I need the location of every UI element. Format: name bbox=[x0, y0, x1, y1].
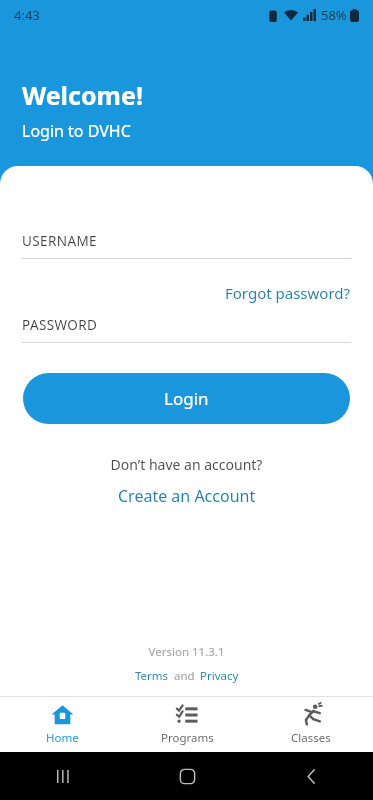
other: Classes bbox=[300, 703, 323, 726]
staticText: 58% bbox=[321, 6, 347, 24]
button[interactable]: Privacy bbox=[198, 668, 241, 684]
button[interactable]: Recents bbox=[0, 752, 125, 800]
button[interactable]: Programs bbox=[125, 697, 249, 752]
staticText: Terms bbox=[135, 668, 169, 684]
staticText: Programs bbox=[161, 730, 214, 746]
staticText: Don’t have an account? bbox=[0, 455, 373, 474]
other: Home bbox=[51, 703, 74, 726]
staticText: Create an Account bbox=[118, 485, 256, 507]
staticText: Login to DVHC bbox=[22, 120, 131, 142]
staticText: Forgot password? bbox=[225, 283, 351, 303]
staticText: 4:43 bbox=[14, 6, 40, 24]
other: Programs bbox=[176, 704, 198, 726]
staticText: Welcome! bbox=[22, 78, 143, 112]
button[interactable]: Login bbox=[23, 373, 350, 424]
staticText: Version 11.3.1 bbox=[0, 644, 373, 660]
button[interactable]: Home bbox=[0, 697, 125, 752]
staticText: USERNAME bbox=[22, 232, 98, 250]
button[interactable]: Classes bbox=[249, 697, 373, 752]
button[interactable]: Back bbox=[249, 752, 373, 800]
staticText: and bbox=[171, 668, 198, 684]
staticText: Home bbox=[46, 730, 79, 746]
staticText: Classes bbox=[291, 730, 331, 746]
staticText: Login bbox=[164, 387, 209, 410]
staticText: PASSWORD bbox=[22, 316, 98, 334]
button[interactable]: Home bbox=[125, 752, 249, 800]
button[interactable]: Forgot password? bbox=[225, 281, 373, 305]
button[interactable]: Create an Account bbox=[106, 483, 268, 509]
button[interactable]: Terms bbox=[133, 668, 171, 684]
staticText: Privacy bbox=[200, 668, 239, 684]
